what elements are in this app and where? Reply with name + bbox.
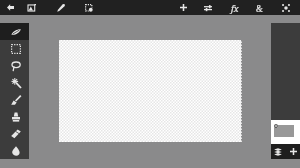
button[interactable]: Magic wand (0, 74, 29, 91)
staticText: fx (231, 2, 239, 14)
button[interactable]: Adjust (196, 0, 220, 15)
button[interactable]: Brush (0, 91, 29, 108)
button[interactable]: Blend (247, 0, 271, 15)
button[interactable]: Transform (274, 0, 298, 15)
button[interactable]: Effects (223, 0, 247, 15)
button[interactable]: Draw (49, 0, 73, 15)
button[interactable]: Layers (271, 144, 285, 159)
button[interactable]: Marquee (0, 40, 29, 57)
button[interactable]: Stamp (0, 108, 29, 125)
button[interactable]: Image (20, 0, 44, 15)
button[interactable]: Eraser (0, 125, 29, 142)
button[interactable]: Select (77, 0, 101, 15)
button[interactable]: Add layer (286, 144, 300, 159)
button[interactable]: Lasso (0, 57, 29, 74)
button[interactable]: Blur (0, 142, 29, 159)
button[interactable]: Layer 1 (271, 120, 300, 144)
button[interactable]: Feather (0, 23, 29, 40)
staticText: & (256, 2, 263, 14)
button[interactable]: Undo (0, 0, 22, 15)
button[interactable]: Add (171, 0, 195, 15)
